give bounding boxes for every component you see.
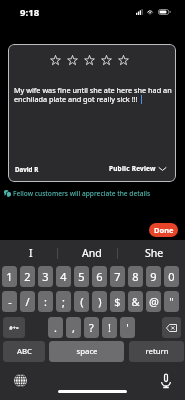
- button[interactable]: ): [92, 291, 107, 312]
- staticText: -: [8, 294, 12, 309]
- staticText: $: [114, 294, 121, 309]
- button[interactable]: ,: [66, 317, 81, 338]
- button[interactable]: 7: [110, 266, 125, 287]
- button[interactable]: And: [61, 240, 123, 266]
- button[interactable]: (: [74, 291, 89, 312]
- staticText: ,: [72, 320, 75, 335]
- staticText: 0: [168, 269, 175, 284]
- button[interactable]: Public Review: [109, 164, 166, 173]
- staticText: 9:18: [20, 6, 40, 19]
- button[interactable]: 1: [2, 266, 17, 287]
- staticText: space: [76, 346, 98, 357]
- button[interactable]: Change keyboard language: [14, 374, 27, 387]
- staticText: She: [145, 246, 164, 260]
- button[interactable]: !: [102, 317, 117, 338]
- staticText: I: [29, 246, 33, 260]
- button[interactable]: 8: [128, 266, 143, 287]
- button[interactable]: [118, 55, 129, 66]
- staticText: 2: [24, 269, 31, 284]
- staticText: Public Review: [109, 164, 156, 173]
- staticText: My wife was fine until she ate here she …: [14, 85, 176, 104]
- staticText: ?: [89, 320, 94, 335]
- button[interactable]: 6: [92, 266, 107, 287]
- button[interactable]: 3: [38, 266, 53, 287]
- button[interactable]: @: [146, 291, 161, 312]
- button[interactable]: 2: [20, 266, 35, 287]
- staticText: 9: [150, 269, 157, 284]
- staticText: ;: [62, 294, 65, 309]
- button[interactable]: Fellow customers will appreciate the det…: [4, 189, 151, 198]
- staticText: !: [108, 320, 111, 335]
- button[interactable]: return: [129, 341, 184, 362]
- button[interactable]: ABC: [3, 341, 45, 362]
- staticText: 3: [42, 269, 49, 284]
- button[interactable]: [84, 55, 95, 66]
- button[interactable]: Backspace: [162, 317, 181, 338]
- button[interactable]: [50, 55, 61, 66]
- button[interactable]: $: [110, 291, 125, 312]
- staticText: #+=: [9, 324, 19, 331]
- staticText: (: [80, 294, 84, 309]
- button[interactable]: 5: [74, 266, 89, 287]
- button[interactable]: Done: [149, 223, 178, 237]
- button[interactable]: space: [49, 341, 124, 362]
- button[interactable]: Dictate: [161, 373, 171, 388]
- staticText: :: [44, 294, 47, 309]
- button[interactable]: I: [0, 240, 61, 266]
- button[interactable]: ?: [84, 317, 99, 338]
- button[interactable]: :: [38, 291, 53, 312]
- staticText: Fellow customers will appreciate the det…: [13, 189, 151, 198]
- button[interactable]: [67, 55, 78, 66]
- button[interactable]: 4: [56, 266, 71, 287]
- staticText: 6: [96, 269, 103, 284]
- staticText: Done: [154, 225, 174, 235]
- staticText: 4: [60, 269, 67, 284]
- button[interactable]: She: [123, 240, 185, 266]
- button[interactable]: 0: [164, 266, 179, 287]
- staticText: And: [82, 246, 102, 260]
- staticText: &: [131, 294, 140, 309]
- staticText: .: [54, 320, 57, 335]
- button[interactable]: 9: [146, 266, 161, 287]
- button[interactable]: ': [120, 317, 135, 338]
- button[interactable]: ": [164, 291, 179, 312]
- staticText: ": [169, 294, 174, 309]
- staticText: /: [25, 294, 30, 309]
- staticText: 5: [78, 269, 85, 284]
- button[interactable]: David R: [15, 165, 39, 173]
- staticText: ': [126, 320, 129, 335]
- button[interactable]: #+=: [3, 317, 25, 338]
- button[interactable]: ;: [56, 291, 71, 312]
- button[interactable]: .: [48, 317, 63, 338]
- staticText: 8: [132, 269, 139, 284]
- button[interactable]: &: [128, 291, 143, 312]
- staticText: 7: [114, 269, 121, 284]
- staticText: 1: [6, 269, 13, 284]
- staticText: return: [145, 346, 169, 357]
- button[interactable]: /: [20, 291, 35, 312]
- staticText: ): [98, 294, 102, 309]
- staticText: @: [149, 294, 159, 309]
- button[interactable]: [101, 55, 112, 66]
- staticText: ABC: [17, 346, 32, 357]
- button[interactable]: -: [2, 291, 17, 312]
